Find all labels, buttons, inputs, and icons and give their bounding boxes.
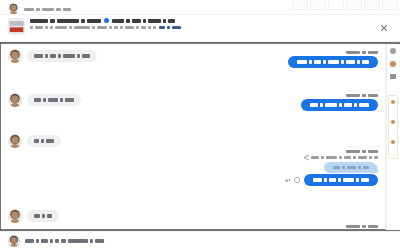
button[interactable] bbox=[8, 18, 400, 41]
button[interactable]: Toolbar item bbox=[328, 0, 344, 10]
button[interactable] bbox=[0, 232, 400, 250]
button[interactable] bbox=[301, 99, 378, 111]
button[interactable]: Contact bbox=[390, 61, 396, 67]
button[interactable] bbox=[8, 134, 400, 148]
button[interactable]: Toolbar item bbox=[292, 0, 308, 10]
button[interactable]: Toolbar item bbox=[382, 0, 398, 10]
button[interactable] bbox=[288, 56, 378, 68]
button[interactable] bbox=[8, 209, 400, 223]
button[interactable]: Toolbar item bbox=[310, 0, 326, 10]
button[interactable]: Sidebar item bbox=[390, 48, 396, 54]
button[interactable] bbox=[304, 174, 378, 186]
button[interactable]: Toolbar item bbox=[364, 0, 380, 10]
button[interactable] bbox=[324, 162, 378, 173]
button[interactable]: Toolbar item bbox=[346, 0, 362, 10]
button[interactable] bbox=[8, 49, 400, 63]
button[interactable]: Close ad bbox=[378, 22, 390, 34]
button[interactable] bbox=[8, 93, 400, 107]
